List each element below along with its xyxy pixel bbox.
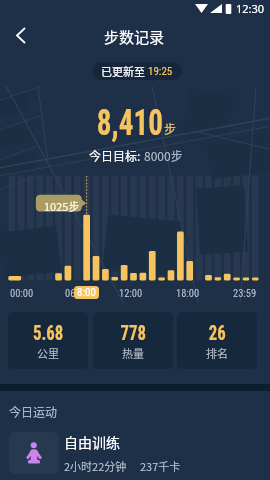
staticText: 公里 (37, 345, 59, 361)
staticText: 18:00 (176, 287, 200, 299)
staticText: 2小时22分钟 (64, 458, 127, 474)
staticText: 步数记录 (104, 26, 165, 48)
button[interactable]: 已更新至 (92, 62, 182, 80)
staticText: 12:00 (119, 287, 143, 299)
staticText: 1025步 (44, 198, 80, 214)
staticText: 自由训练 (64, 432, 120, 452)
staticText: 26 (209, 321, 226, 344)
staticText: 19:25 (148, 65, 173, 78)
staticText: 排名 (206, 345, 228, 361)
staticText: 8:00 (77, 286, 96, 299)
staticText: 今日运动 (9, 403, 58, 420)
staticText: 步 (164, 120, 177, 137)
button[interactable]: 5.68 (8, 312, 88, 369)
staticText: 06:00 (65, 287, 89, 299)
button[interactable]: 26 (177, 312, 257, 369)
staticText: 8,410 (97, 102, 163, 144)
staticText: 12:30 (236, 1, 265, 16)
staticText: 今日目标: (89, 147, 144, 164)
staticText: 5.68 (33, 321, 64, 344)
button[interactable]: Back (5, 19, 37, 51)
staticText: 8000步 (144, 147, 183, 164)
staticText: 热量 (122, 345, 144, 361)
staticText: 237千卡 (140, 458, 181, 474)
button[interactable]: 778 (93, 312, 173, 369)
staticText: 已更新至 (101, 63, 148, 79)
staticText: 23:59 (233, 287, 257, 299)
staticText: 00:00 (10, 287, 34, 299)
button[interactable]: 自由训练 (0, 425, 270, 480)
staticText: 778 (120, 321, 146, 344)
